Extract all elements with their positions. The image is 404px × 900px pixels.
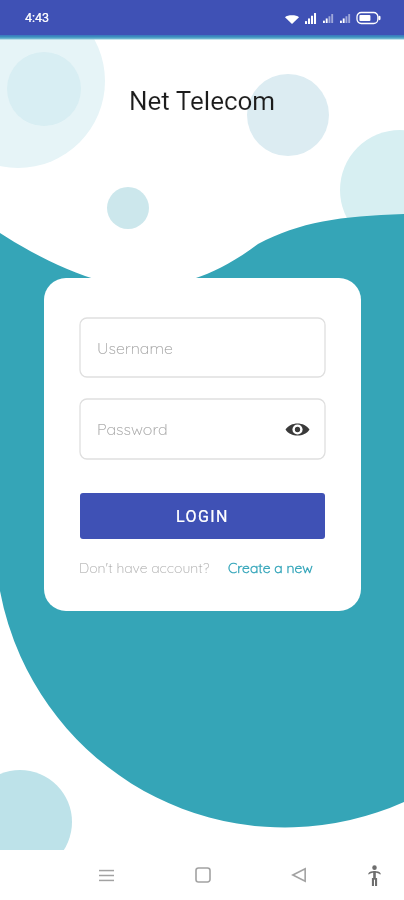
- button[interactable]: Create a new: [228, 559, 313, 577]
- staticText: Create a new: [228, 559, 313, 577]
- button[interactable]: Back: [251, 850, 347, 900]
- staticText: 4:43: [25, 10, 50, 25]
- staticText: Don't have account?: [79, 559, 210, 577]
- staticText: LOGIN: [176, 507, 229, 526]
- staticText: Username: [97, 338, 173, 358]
- button[interactable]: Password: [80, 399, 325, 459]
- button[interactable]: Show password: [283, 415, 311, 443]
- button[interactable]: Home: [155, 850, 251, 900]
- staticText: Password: [97, 419, 168, 439]
- button[interactable]: Recents: [58, 850, 154, 900]
- button[interactable]: Username: [80, 318, 325, 377]
- button[interactable]: Accessibility: [326, 850, 404, 900]
- staticText: Net Telecom: [129, 86, 276, 116]
- button[interactable]: LOGIN: [80, 493, 325, 539]
